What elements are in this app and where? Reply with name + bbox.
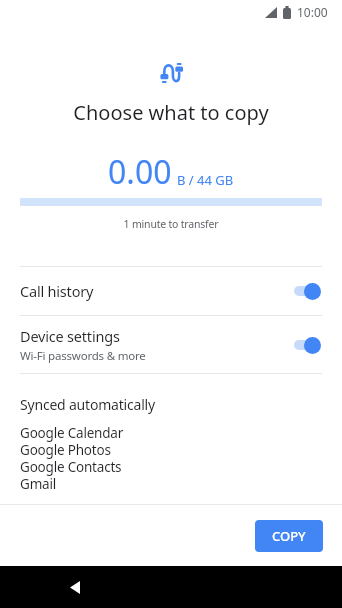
button[interactable]	[294, 282, 320, 300]
staticText: 1 minute to transfer	[0, 217, 342, 231]
button[interactable]: Device settings	[0, 316, 342, 373]
staticText: Synced automatically	[20, 395, 155, 414]
button[interactable]	[294, 336, 320, 354]
staticText: 0.00	[108, 150, 172, 194]
staticText: Choose what to copy	[0, 99, 342, 126]
staticText: COPY	[272, 527, 306, 545]
staticText: 10:00	[297, 4, 328, 20]
button[interactable]: Call history	[0, 267, 342, 315]
staticText: B / 44 GB	[177, 171, 234, 189]
button[interactable]: COPY	[255, 520, 323, 552]
staticText: Device settings	[20, 326, 120, 346]
button[interactable]	[70, 581, 80, 594]
staticText: Wi-Fi passwords & more	[20, 348, 146, 364]
staticText: Call history	[20, 281, 94, 301]
staticText: Google Calendar Google Photos Google Con…	[20, 424, 124, 493]
